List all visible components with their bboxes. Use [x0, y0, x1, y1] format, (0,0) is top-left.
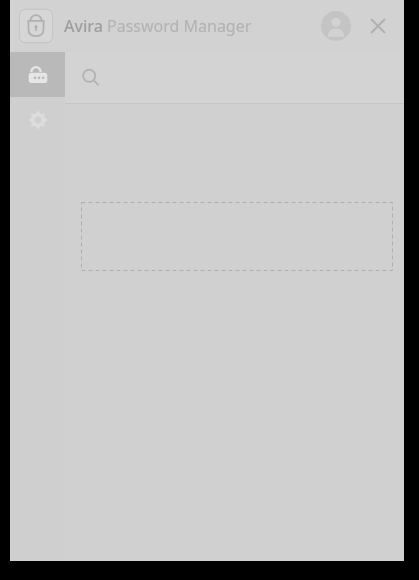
- button[interactable]: Avira logo: [18, 8, 54, 44]
- button[interactable]: Passwords: [10, 52, 65, 97]
- staticText: Avira Password Manager: [64, 15, 252, 37]
- button[interactable]: Close: [358, 6, 398, 46]
- button[interactable]: Account: [316, 6, 356, 46]
